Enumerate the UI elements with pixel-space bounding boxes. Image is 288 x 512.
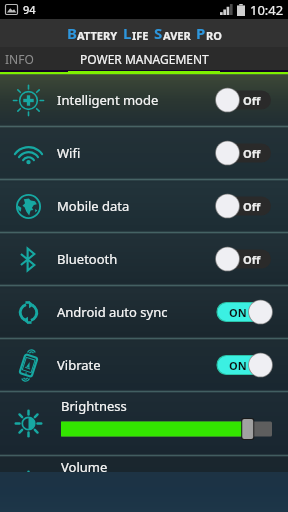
- staticText: IFE: [132, 28, 149, 43]
- staticText: Off: [243, 199, 261, 214]
- staticText: 94: [23, 2, 36, 17]
- staticText: ON: [229, 305, 247, 320]
- staticText: Wifi: [57, 144, 81, 162]
- button[interactable]: INFO: [0, 47, 68, 70]
- staticText: AVER: [163, 28, 191, 43]
- button[interactable]: Vibrate: [0, 340, 288, 390]
- staticText: INFO: [5, 51, 34, 67]
- staticText: S: [154, 23, 163, 43]
- staticText: Off: [243, 252, 261, 267]
- button[interactable]: Android auto sync: [0, 287, 288, 337]
- button[interactable]: POWER MANAGEMENT: [68, 47, 220, 70]
- staticText: Bluetooth: [57, 250, 118, 268]
- staticText: ON: [229, 358, 247, 373]
- button[interactable]: Bluetooth off: [215, 247, 273, 271]
- button[interactable]: Intelligent mode: [0, 75, 288, 125]
- staticText: Off: [243, 93, 261, 108]
- button[interactable]: Volume: [0, 457, 288, 512]
- button[interactable]: Wifi: [0, 128, 288, 178]
- staticText: Vibrate: [57, 356, 101, 374]
- button[interactable]: Android auto sync on: [215, 300, 273, 324]
- staticText: Volume: [61, 458, 108, 476]
- staticText: Intelligent mode: [57, 91, 159, 109]
- staticText: B: [67, 23, 77, 43]
- button[interactable]: Intelligent mode off: [215, 88, 273, 112]
- staticText: Android auto sync: [57, 303, 168, 321]
- button[interactable]: Mobile data: [0, 181, 288, 231]
- staticText: Off: [243, 146, 261, 161]
- staticText: Brightness: [61, 397, 127, 415]
- staticText: L: [123, 23, 132, 43]
- staticText: RO: [206, 28, 222, 43]
- staticText: POWER MANAGEMENT: [80, 51, 209, 67]
- button[interactable]: Vibrate on: [215, 353, 273, 377]
- staticText: 10:42: [250, 1, 284, 19]
- staticText: Mobile data: [57, 197, 130, 215]
- button[interactable]: Wifi off: [215, 141, 273, 165]
- button[interactable]: Bluetooth: [0, 234, 288, 284]
- button[interactable]: Mobile data off: [215, 194, 273, 218]
- button[interactable]: Brightness: [0, 393, 288, 454]
- staticText: P: [196, 23, 206, 43]
- staticText: ATTERY: [77, 28, 118, 43]
